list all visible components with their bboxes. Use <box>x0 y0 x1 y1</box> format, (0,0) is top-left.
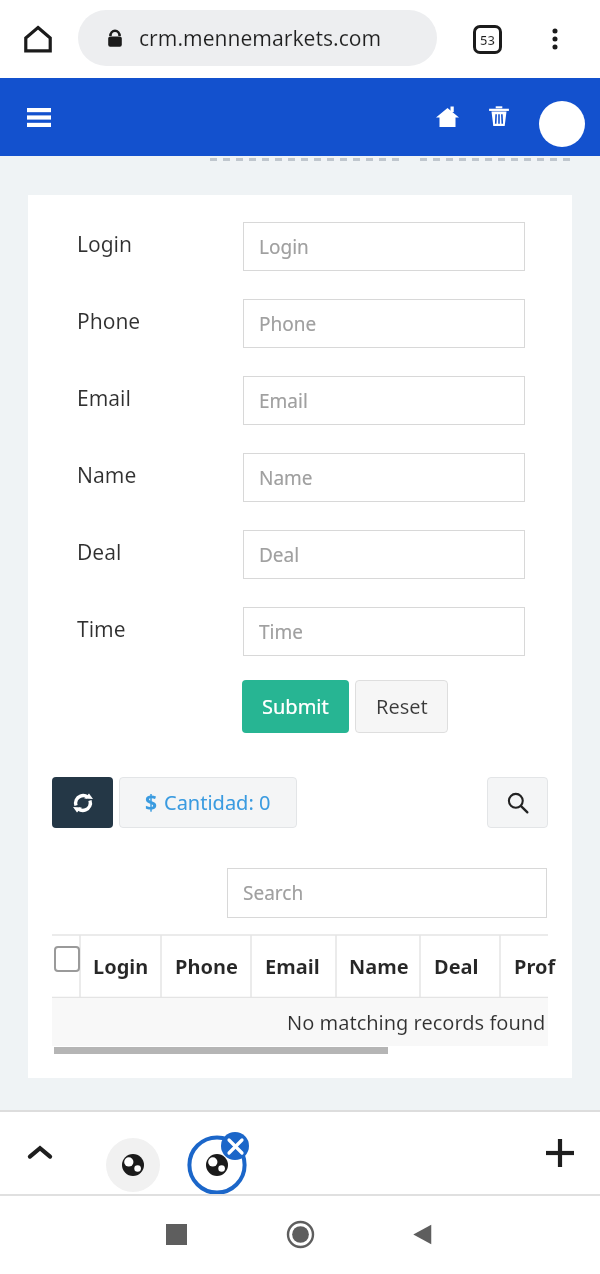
staticText: $ <box>145 788 158 817</box>
staticText: Email <box>77 384 131 413</box>
button[interactable]: Submit <box>242 680 349 733</box>
button[interactable]: crm.mennemarkets.com <box>78 10 437 66</box>
button[interactable]: Close tab <box>221 1132 249 1160</box>
button[interactable]: Expand <box>16 1129 64 1177</box>
button[interactable]: Email <box>243 376 525 425</box>
staticText: Deal <box>434 953 479 980</box>
button[interactable]: Search <box>227 868 547 918</box>
button[interactable]: Delete <box>474 91 524 141</box>
button[interactable]: Home <box>276 1210 324 1258</box>
staticText: Deal <box>259 542 300 568</box>
button[interactable]: Refresh <box>52 777 113 828</box>
staticText: Cantidad: 0 <box>164 789 271 816</box>
button[interactable]: Reset <box>355 680 448 733</box>
button[interactable]: Time <box>243 607 525 656</box>
staticText: Phone <box>77 307 141 336</box>
staticText: Phone <box>259 311 317 337</box>
button[interactable]: Phone <box>243 299 525 348</box>
staticText: No matching records found <box>287 1009 546 1036</box>
button[interactable]: Select all <box>54 946 80 972</box>
staticText: Prof <box>514 953 556 980</box>
button[interactable]: Current tab <box>185 1133 249 1197</box>
button[interactable]: Back <box>398 1210 446 1258</box>
button[interactable]: Name <box>243 453 525 502</box>
button[interactable]: Home <box>14 15 62 63</box>
button[interactable]: Search <box>487 777 548 828</box>
button[interactable]: Home <box>422 91 472 141</box>
staticText: Search <box>243 880 304 906</box>
staticText: Email <box>265 953 320 980</box>
button[interactable]: New tab <box>536 1129 584 1177</box>
button[interactable]: $ <box>119 777 297 828</box>
staticText: Email <box>259 388 308 414</box>
staticText: Time <box>77 615 126 644</box>
staticText: Time <box>259 619 303 645</box>
staticText: Submit <box>262 693 329 720</box>
staticText: Login <box>93 953 149 980</box>
button[interactable]: Tabs <box>464 16 510 62</box>
staticText: Login <box>259 234 309 260</box>
button[interactable]: Account <box>539 101 585 147</box>
staticText: 53 <box>480 31 495 49</box>
staticText: Reset <box>376 693 428 720</box>
staticText: Name <box>77 461 137 490</box>
button[interactable]: Login <box>243 222 525 271</box>
button[interactable]: More options <box>532 16 578 62</box>
button[interactable]: Tab <box>106 1138 160 1192</box>
staticText: Name <box>259 465 313 491</box>
staticText: Name <box>349 953 409 980</box>
staticText: Phone <box>175 953 238 980</box>
staticText: Deal <box>77 538 122 567</box>
staticText: Login <box>77 230 133 259</box>
staticText: crm.mennemarkets.com <box>139 24 382 53</box>
button[interactable]: Recent apps <box>152 1210 200 1258</box>
button[interactable]: Deal <box>243 530 525 579</box>
button[interactable]: Menu <box>14 92 64 142</box>
